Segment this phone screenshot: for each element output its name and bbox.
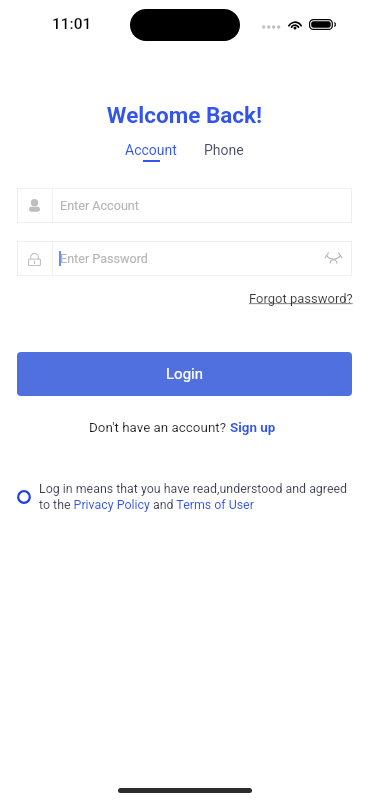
- staticText: Account: [125, 142, 177, 158]
- staticText: Login: [166, 365, 203, 383]
- staticText: Enter Account: [60, 198, 139, 213]
- button[interactable]: Sign up: [230, 420, 276, 436]
- button[interactable]: Account: [125, 142, 177, 162]
- staticText: Don't have an account?: [89, 420, 230, 436]
- staticText: Sign up: [230, 420, 276, 436]
- button[interactable]: Toggle password visibility: [314, 241, 352, 276]
- staticText: Welcome Back!: [0, 102, 369, 128]
- staticText: 11:01: [52, 15, 92, 33]
- staticText: Forgot password?: [249, 291, 353, 306]
- staticText: Log in means that you have read,understo…: [39, 481, 361, 512]
- button[interactable]: Phone: [204, 142, 244, 158]
- staticText: Phone: [204, 142, 244, 158]
- button[interactable]: Forgot password?: [249, 291, 353, 306]
- staticText: Enter Password: [60, 251, 148, 266]
- button[interactable]: Login: [17, 352, 352, 396]
- button[interactable]: Agree to terms: [16, 489, 32, 505]
